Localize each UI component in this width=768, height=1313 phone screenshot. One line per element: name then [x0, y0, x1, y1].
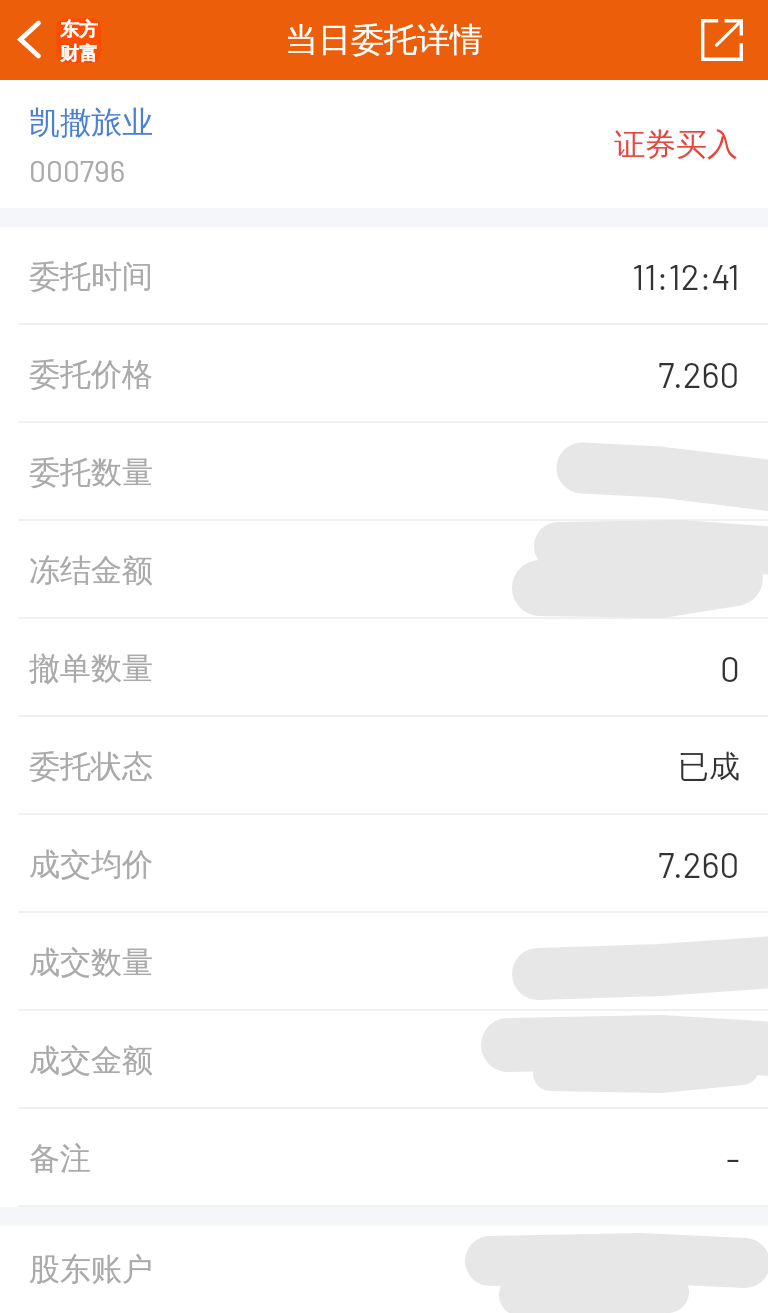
staticText: 东方	[60, 18, 98, 42]
staticText: 委托状态	[29, 747, 153, 786]
staticText: 7.260	[658, 353, 740, 395]
button[interactable]: 成交均价	[0, 815, 768, 913]
staticText: 委托数量	[29, 453, 153, 492]
staticText: 冻结金额	[29, 551, 153, 590]
button[interactable]: 备注	[0, 1109, 768, 1207]
button[interactable]: 成交金额	[0, 1011, 768, 1109]
button[interactable]: 委托价格	[0, 325, 768, 423]
button[interactable]: 委托时间	[0, 227, 768, 325]
button[interactable]: 成交数量	[0, 913, 768, 1011]
staticText: 凯撒旅业	[29, 103, 153, 142]
staticText: 7.260	[658, 843, 740, 885]
staticText: 撤单数量	[29, 649, 153, 688]
button[interactable]: Share	[694, 12, 750, 68]
staticText: 0	[720, 647, 740, 689]
button[interactable]: 委托数量	[0, 423, 768, 521]
button[interactable]: Back	[0, 12, 56, 68]
button[interactable]: 东方	[56, 18, 101, 63]
staticText: 备注	[29, 1139, 91, 1178]
staticText: -	[726, 1137, 740, 1179]
staticText: 已成	[678, 747, 740, 786]
staticText: 委托价格	[29, 355, 153, 394]
staticText: 财富	[60, 42, 98, 63]
button[interactable]: 撤单数量	[0, 619, 768, 717]
staticText: 当日委托详情	[285, 19, 483, 61]
button[interactable]: 冻结金额	[0, 521, 768, 619]
button[interactable]: 股东账户	[0, 1226, 768, 1313]
staticText: 股东账户	[29, 1250, 153, 1289]
staticText: 成交金额	[29, 1041, 153, 1080]
staticText: 成交均价	[29, 845, 153, 884]
staticText: 证券买入	[614, 125, 738, 164]
button[interactable]: 凯撒旅业	[0, 80, 768, 208]
staticText: 委托时间	[29, 257, 153, 296]
button[interactable]: 委托状态	[0, 717, 768, 815]
staticText: 000796	[29, 152, 126, 188]
staticText: 11:12:41	[632, 255, 740, 297]
staticText: 成交数量	[29, 943, 153, 982]
